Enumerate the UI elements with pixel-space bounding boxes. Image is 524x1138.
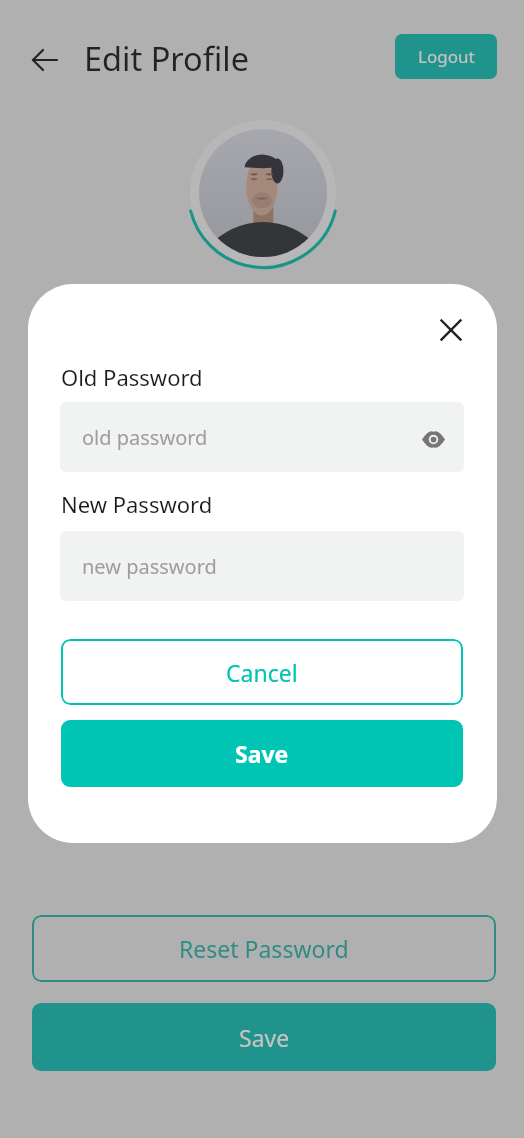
staticText: Save: [235, 738, 289, 769]
button[interactable]: Logout: [395, 34, 497, 79]
button[interactable]: Close: [429, 308, 473, 352]
button[interactable]: Save: [61, 720, 463, 787]
staticText: Old Password: [61, 362, 203, 392]
staticText: Cancel: [226, 657, 298, 688]
staticText: Save: [239, 1022, 290, 1053]
button[interactable]: Show password: [422, 428, 445, 451]
button[interactable]: Cancel: [61, 639, 463, 705]
button[interactable]: Save: [32, 1003, 496, 1071]
button[interactable]: old password: [60, 402, 464, 472]
staticText: New Password: [61, 489, 213, 519]
button[interactable]: new password: [60, 531, 464, 601]
button[interactable]: Reset Password: [32, 915, 496, 982]
staticText: Logout: [418, 45, 475, 68]
button[interactable]: Back: [32, 47, 58, 73]
staticText: Reset Password: [179, 933, 349, 964]
staticText: new password: [82, 553, 217, 580]
staticText: old password: [82, 424, 208, 451]
staticText: Edit Profile: [84, 36, 250, 80]
